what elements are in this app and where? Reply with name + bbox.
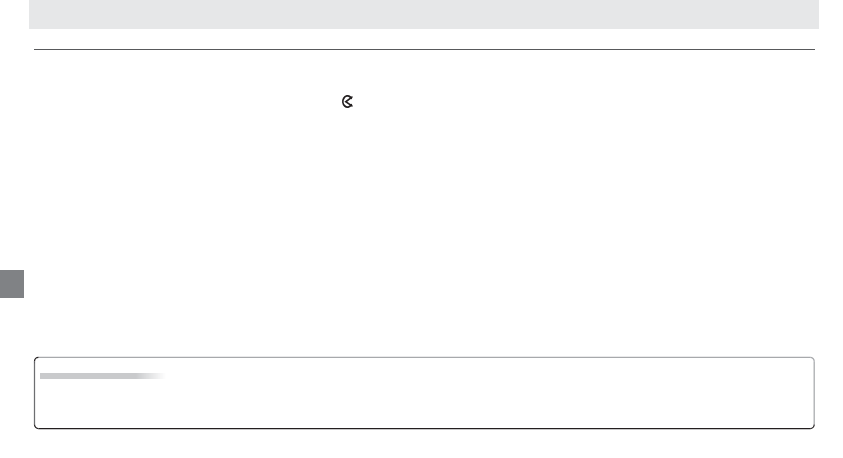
button[interactable]: Logo bbox=[342, 95, 353, 108]
button[interactable] bbox=[33, 355, 816, 431]
